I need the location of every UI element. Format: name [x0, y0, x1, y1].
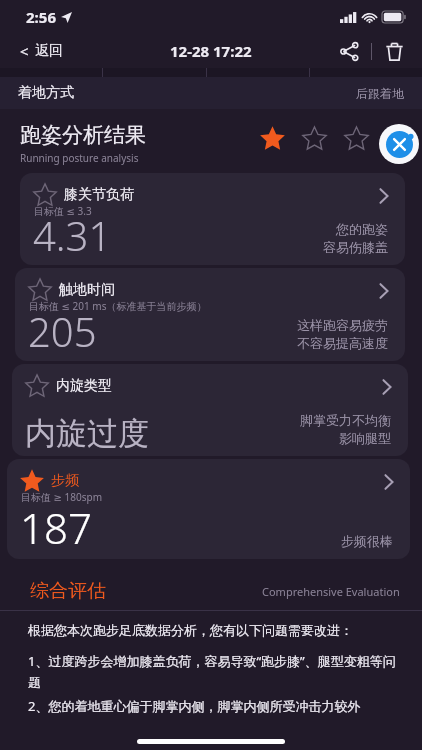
- staticText: 步频很棒: [341, 533, 393, 549]
- button[interactable]: Delete: [381, 38, 408, 65]
- button[interactable]: Analyze: [379, 124, 419, 164]
- staticText: 跑姿分析结果: [20, 122, 146, 148]
- button[interactable]: 膝关节负荷: [20, 173, 405, 265]
- staticText: 返回: [35, 42, 63, 60]
- staticText: 您的跑姿: [336, 221, 388, 237]
- staticText: 内旋过度: [25, 414, 149, 453]
- staticText: 影响腿型: [339, 430, 391, 446]
- button[interactable]: 触地时间: [15, 268, 405, 361]
- staticText: 膝关节负荷: [64, 186, 134, 204]
- button[interactable]: <: [0, 37, 73, 65]
- staticText: Comprehensive Evaluation: [262, 584, 400, 599]
- staticText: 目标值 ≤ 201 ms（标准基于当前步频）: [29, 299, 207, 313]
- button[interactable]: 着地方式: [0, 77, 422, 109]
- staticText: 1、过度跨步会增加膝盖负荷，容易导致“跑步膝”、腿型变粗等问题: [28, 652, 404, 691]
- staticText: 这样跑容易疲劳: [297, 317, 388, 333]
- staticText: 综合评估: [30, 579, 106, 603]
- staticText: 目标值 ≤ 3.3: [34, 204, 92, 218]
- staticText: 2、您的着地重心偏于脚掌内侧，脚掌内侧所受冲击力较外: [28, 697, 361, 715]
- staticText: 2:56: [26, 7, 56, 27]
- staticText: 4.31: [33, 208, 112, 262]
- staticText: 目标值 ≥ 180spm: [21, 490, 103, 504]
- staticText: 触地时间: [59, 281, 115, 299]
- staticText: 根据您本次跑步足底数据分析，您有以下问题需要改进：: [28, 622, 353, 638]
- staticText: 不容易提高速度: [297, 335, 388, 351]
- staticText: 后跟着地: [356, 86, 404, 101]
- staticText: 187: [20, 499, 92, 556]
- staticText: 步频: [51, 472, 79, 490]
- staticText: 内旋类型: [56, 377, 112, 395]
- staticText: Running posture analysis: [20, 151, 139, 165]
- button[interactable]: Share: [334, 36, 365, 67]
- staticText: 脚掌受力不均衡: [300, 412, 391, 428]
- staticText: 12-28 17:22: [170, 41, 252, 61]
- staticText: 着地方式: [18, 84, 74, 102]
- button[interactable]: 步频: [7, 459, 410, 559]
- staticText: 205: [28, 304, 97, 358]
- staticText: <: [20, 41, 29, 61]
- staticText: 容易伤膝盖: [323, 239, 388, 255]
- button[interactable]: 内旋类型: [12, 364, 408, 456]
